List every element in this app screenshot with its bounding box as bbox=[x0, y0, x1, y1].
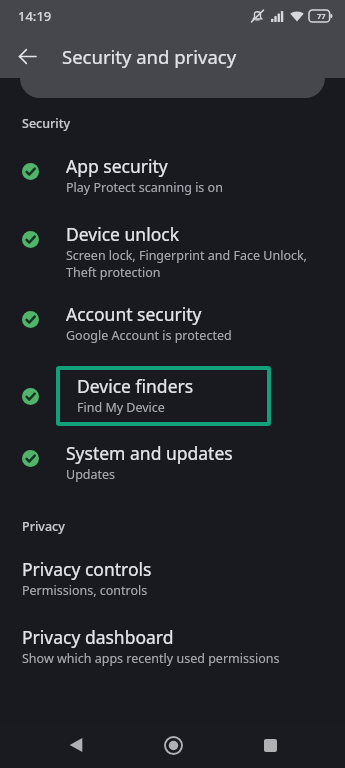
button[interactable]: Back bbox=[10, 39, 44, 73]
button[interactable]: Recents bbox=[248, 723, 292, 767]
staticText: Privacy controls bbox=[22, 557, 152, 581]
staticText: Permissions, controls bbox=[22, 582, 148, 599]
staticText: Privacy dashboard bbox=[22, 625, 174, 649]
button[interactable]: Account security bbox=[0, 302, 345, 344]
staticText: Find My Device bbox=[77, 399, 165, 416]
staticText: Device finders bbox=[77, 374, 194, 398]
staticText: Security bbox=[22, 115, 71, 132]
button[interactable]: Back bbox=[54, 723, 98, 767]
staticText: Account security bbox=[66, 302, 202, 326]
staticText: App security bbox=[66, 154, 168, 178]
button[interactable]: Privacy controls bbox=[0, 557, 345, 599]
button[interactable]: System and updates bbox=[0, 441, 345, 483]
staticText: Play Protect scanning is on bbox=[66, 179, 223, 196]
staticText: Device unlock bbox=[66, 222, 179, 246]
staticText: Updates bbox=[66, 466, 116, 483]
staticText: Privacy bbox=[22, 518, 65, 535]
button[interactable]: Device finders bbox=[0, 366, 345, 426]
button[interactable]: Device unlock bbox=[0, 222, 345, 281]
staticText: System and updates bbox=[66, 441, 233, 465]
staticText: Google Account is protected bbox=[66, 327, 232, 344]
staticText: 77 bbox=[317, 11, 326, 21]
button[interactable]: Privacy dashboard bbox=[0, 625, 345, 667]
button[interactable]: App security bbox=[0, 154, 345, 196]
staticText: Security and privacy bbox=[62, 44, 237, 69]
staticText: Show which apps recently used permission… bbox=[22, 650, 280, 667]
button[interactable]: Home bbox=[151, 723, 195, 767]
staticText: 14:19 bbox=[18, 7, 52, 25]
staticText: Screen lock, Fingerprint and Face Unlock… bbox=[66, 247, 307, 281]
